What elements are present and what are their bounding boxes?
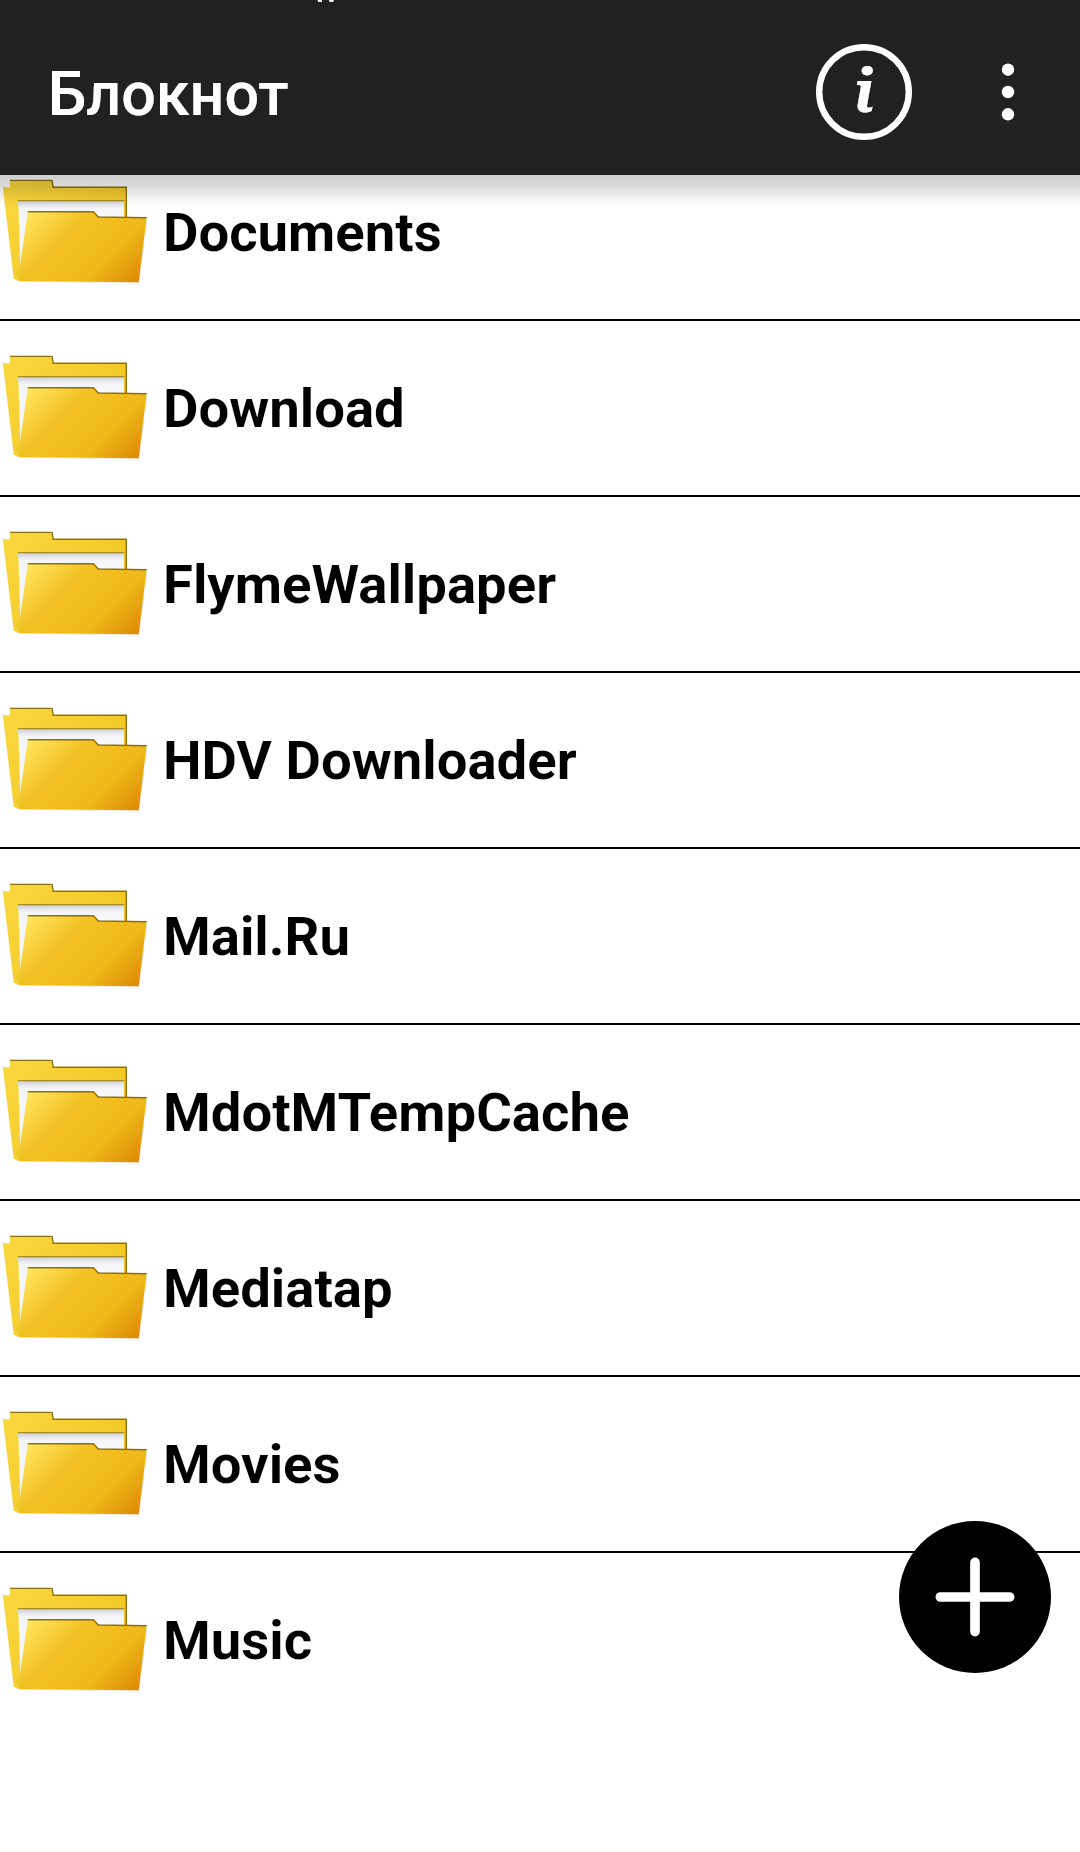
staticText: Блокнот	[48, 58, 289, 129]
button[interactable]: More options	[948, 32, 1068, 152]
button[interactable]: Download	[0, 321, 1080, 497]
button[interactable]: Info	[796, 24, 932, 160]
staticText: Mediatap	[163, 1256, 393, 1320]
button[interactable]: Movies	[0, 1377, 1080, 1553]
staticText: HDV Downloader	[163, 728, 577, 792]
button[interactable]: Music	[0, 1553, 1080, 1729]
staticText: MdotMTempCache	[163, 1080, 630, 1144]
button[interactable]: Mediatap	[0, 1201, 1080, 1377]
staticText: Music	[163, 1608, 313, 1672]
button[interactable]: MdotMTempCache	[0, 1025, 1080, 1201]
button[interactable]: FlymeWallpaper	[0, 497, 1080, 673]
button[interactable]: Add	[899, 1521, 1051, 1673]
button[interactable]: Mail.Ru	[0, 849, 1080, 1025]
staticText: i	[854, 55, 875, 128]
staticText: FlymeWallpaper	[163, 552, 557, 616]
button[interactable]: HDV Downloader	[0, 673, 1080, 849]
staticText: Download	[163, 376, 405, 440]
staticText: Movies	[163, 1432, 341, 1496]
staticText: Mail.Ru	[163, 904, 350, 968]
button[interactable]: Documents	[0, 145, 1080, 321]
staticText: Documents	[163, 200, 442, 264]
